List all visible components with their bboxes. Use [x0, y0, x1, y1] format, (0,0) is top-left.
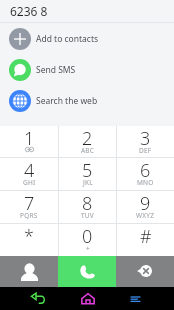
button[interactable]: # [117, 224, 174, 256]
button[interactable]: 4 [0, 158, 58, 190]
button[interactable]: Add to contacts [0, 23, 174, 54]
button[interactable]: 8 [59, 191, 116, 223]
staticText: 7 [24, 191, 35, 216]
staticText: # [140, 224, 152, 249]
button[interactable]: 1 [0, 126, 58, 157]
staticText: GHI [23, 178, 36, 187]
staticText: WXYZ [136, 211, 155, 220]
staticText: 6 [140, 158, 151, 183]
button[interactable]: Back [30, 287, 46, 310]
staticText: 6236 8 [10, 3, 48, 19]
button[interactable]: 3 [117, 126, 174, 157]
staticText: + [86, 244, 90, 253]
button[interactable]: 7 [0, 191, 58, 223]
staticText: Add to contacts [36, 33, 99, 45]
staticText: TUV [81, 211, 94, 220]
staticText: 5 [82, 158, 93, 183]
staticText: ABC [81, 146, 95, 155]
staticText: JKL [83, 178, 93, 187]
staticText: 4 [24, 158, 35, 183]
staticText: MNO [137, 178, 154, 187]
staticText: PQRS [20, 211, 38, 220]
button[interactable]: Search the web [0, 85, 174, 116]
button[interactable]: 6 [117, 158, 174, 190]
button[interactable]: Backspace [116, 256, 174, 287]
staticText: Send SMS [36, 64, 76, 76]
staticText: DEF [139, 146, 152, 155]
button[interactable]: 2 [59, 126, 116, 157]
button[interactable]: 5 [59, 158, 116, 190]
button[interactable]: 0 [59, 224, 116, 256]
button[interactable]: 9 [117, 191, 174, 223]
button[interactable]: Send SMS [0, 54, 174, 85]
button[interactable]: Home [80, 287, 96, 310]
staticText: 3 [140, 126, 151, 151]
button[interactable]: Contacts [0, 256, 58, 287]
staticText: 2 [82, 126, 93, 151]
staticText: Search the web [36, 95, 98, 107]
staticText: 9 [140, 191, 151, 216]
button[interactable]: Recent apps [127, 287, 143, 310]
staticText: 1 [24, 126, 35, 151]
button[interactable]: Call [58, 256, 116, 287]
staticText: 8 [82, 191, 93, 216]
button[interactable]: * [0, 224, 58, 256]
staticText: 0 [82, 224, 93, 249]
staticText: * [24, 224, 34, 249]
